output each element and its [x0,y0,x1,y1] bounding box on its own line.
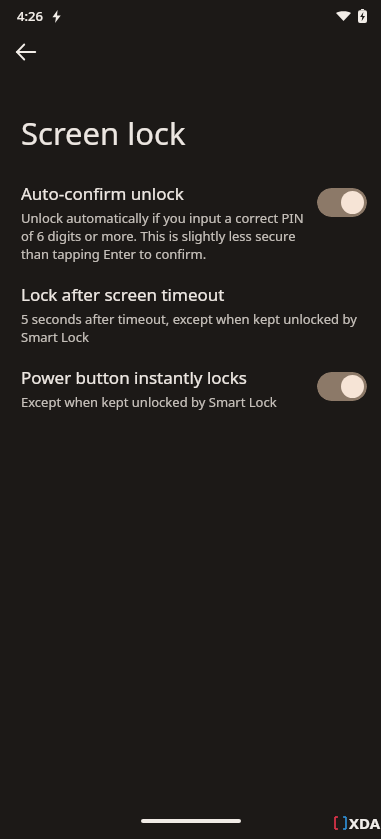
staticText: Auto-confirm unlock [21,182,184,205]
staticText: Screen lock [21,112,186,154]
staticText: 4:26 [17,7,43,25]
staticText: Lock after screen timeout [21,283,225,306]
staticText: XDA [349,813,381,833]
button[interactable]: Back [6,32,46,72]
button[interactable]: Auto-confirm unlock [0,180,381,265]
staticText: Except when kept unlocked by Smart Lock [21,393,277,411]
button[interactable]: Auto-confirm unlock toggle [317,188,367,217]
staticText: Unlock automatically if you input a corr… [21,209,305,263]
staticText: Power button instantly locks [21,366,247,389]
button[interactable]: Lock after screen timeout [0,281,381,348]
button[interactable]: Power button instantly locks toggle [317,372,367,401]
staticText: 5 seconds after timeout, except when kep… [21,310,367,346]
button[interactable]: Power button instantly locks [0,364,381,413]
